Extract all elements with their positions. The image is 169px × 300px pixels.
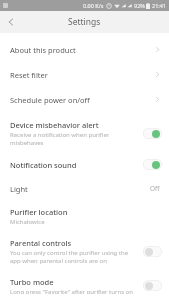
- staticText: Settings: [68, 16, 101, 28]
- staticText: You can only control the purifier using …: [10, 249, 137, 265]
- staticText: Off: [150, 184, 160, 193]
- button[interactable]: Light: [0, 176, 169, 201]
- other: Open: [154, 46, 161, 53]
- staticText: 0.00 K/s: [83, 2, 104, 9]
- staticText: Turbo mode: [10, 277, 54, 287]
- button[interactable]: Toggle on: [143, 159, 162, 170]
- staticText: Michałowice: [10, 218, 45, 226]
- other: Open: [154, 71, 161, 78]
- staticText: 92%: [134, 2, 145, 9]
- button[interactable]: Toggle off: [143, 246, 162, 257]
- button[interactable]: Toggle on: [143, 128, 162, 139]
- button[interactable]: About this product: [0, 37, 169, 62]
- button[interactable]: Schedule power on/off: [0, 87, 169, 112]
- staticText: Long press "Favorite" after purifier tur…: [10, 288, 137, 294]
- button[interactable]: Back: [0, 11, 22, 33]
- button[interactable]: Reset filter: [0, 62, 169, 87]
- staticText: Schedule power on/off: [10, 95, 154, 105]
- staticText: About this product: [10, 45, 154, 55]
- other: Open: [154, 96, 161, 103]
- staticText: Notification sound: [10, 160, 77, 170]
- staticText: Reset filter: [10, 70, 154, 80]
- staticText: Receive a notification when purifier mis…: [10, 131, 137, 147]
- button[interactable]: Notification sound: [0, 153, 169, 176]
- button[interactable]: Toggle off: [143, 280, 162, 291]
- button[interactable]: Device misbehavior alert: [0, 114, 169, 153]
- staticText: Parental controls: [10, 238, 72, 248]
- staticText: Light: [10, 184, 150, 194]
- button[interactable]: Purifier location: [0, 201, 169, 232]
- staticText: 21:41: [152, 2, 167, 9]
- button[interactable]: Parental controls: [0, 232, 169, 271]
- staticText: Device misbehavior alert: [10, 120, 99, 130]
- button[interactable]: Turbo mode: [0, 271, 169, 300]
- staticText: Purifier location: [10, 207, 68, 217]
